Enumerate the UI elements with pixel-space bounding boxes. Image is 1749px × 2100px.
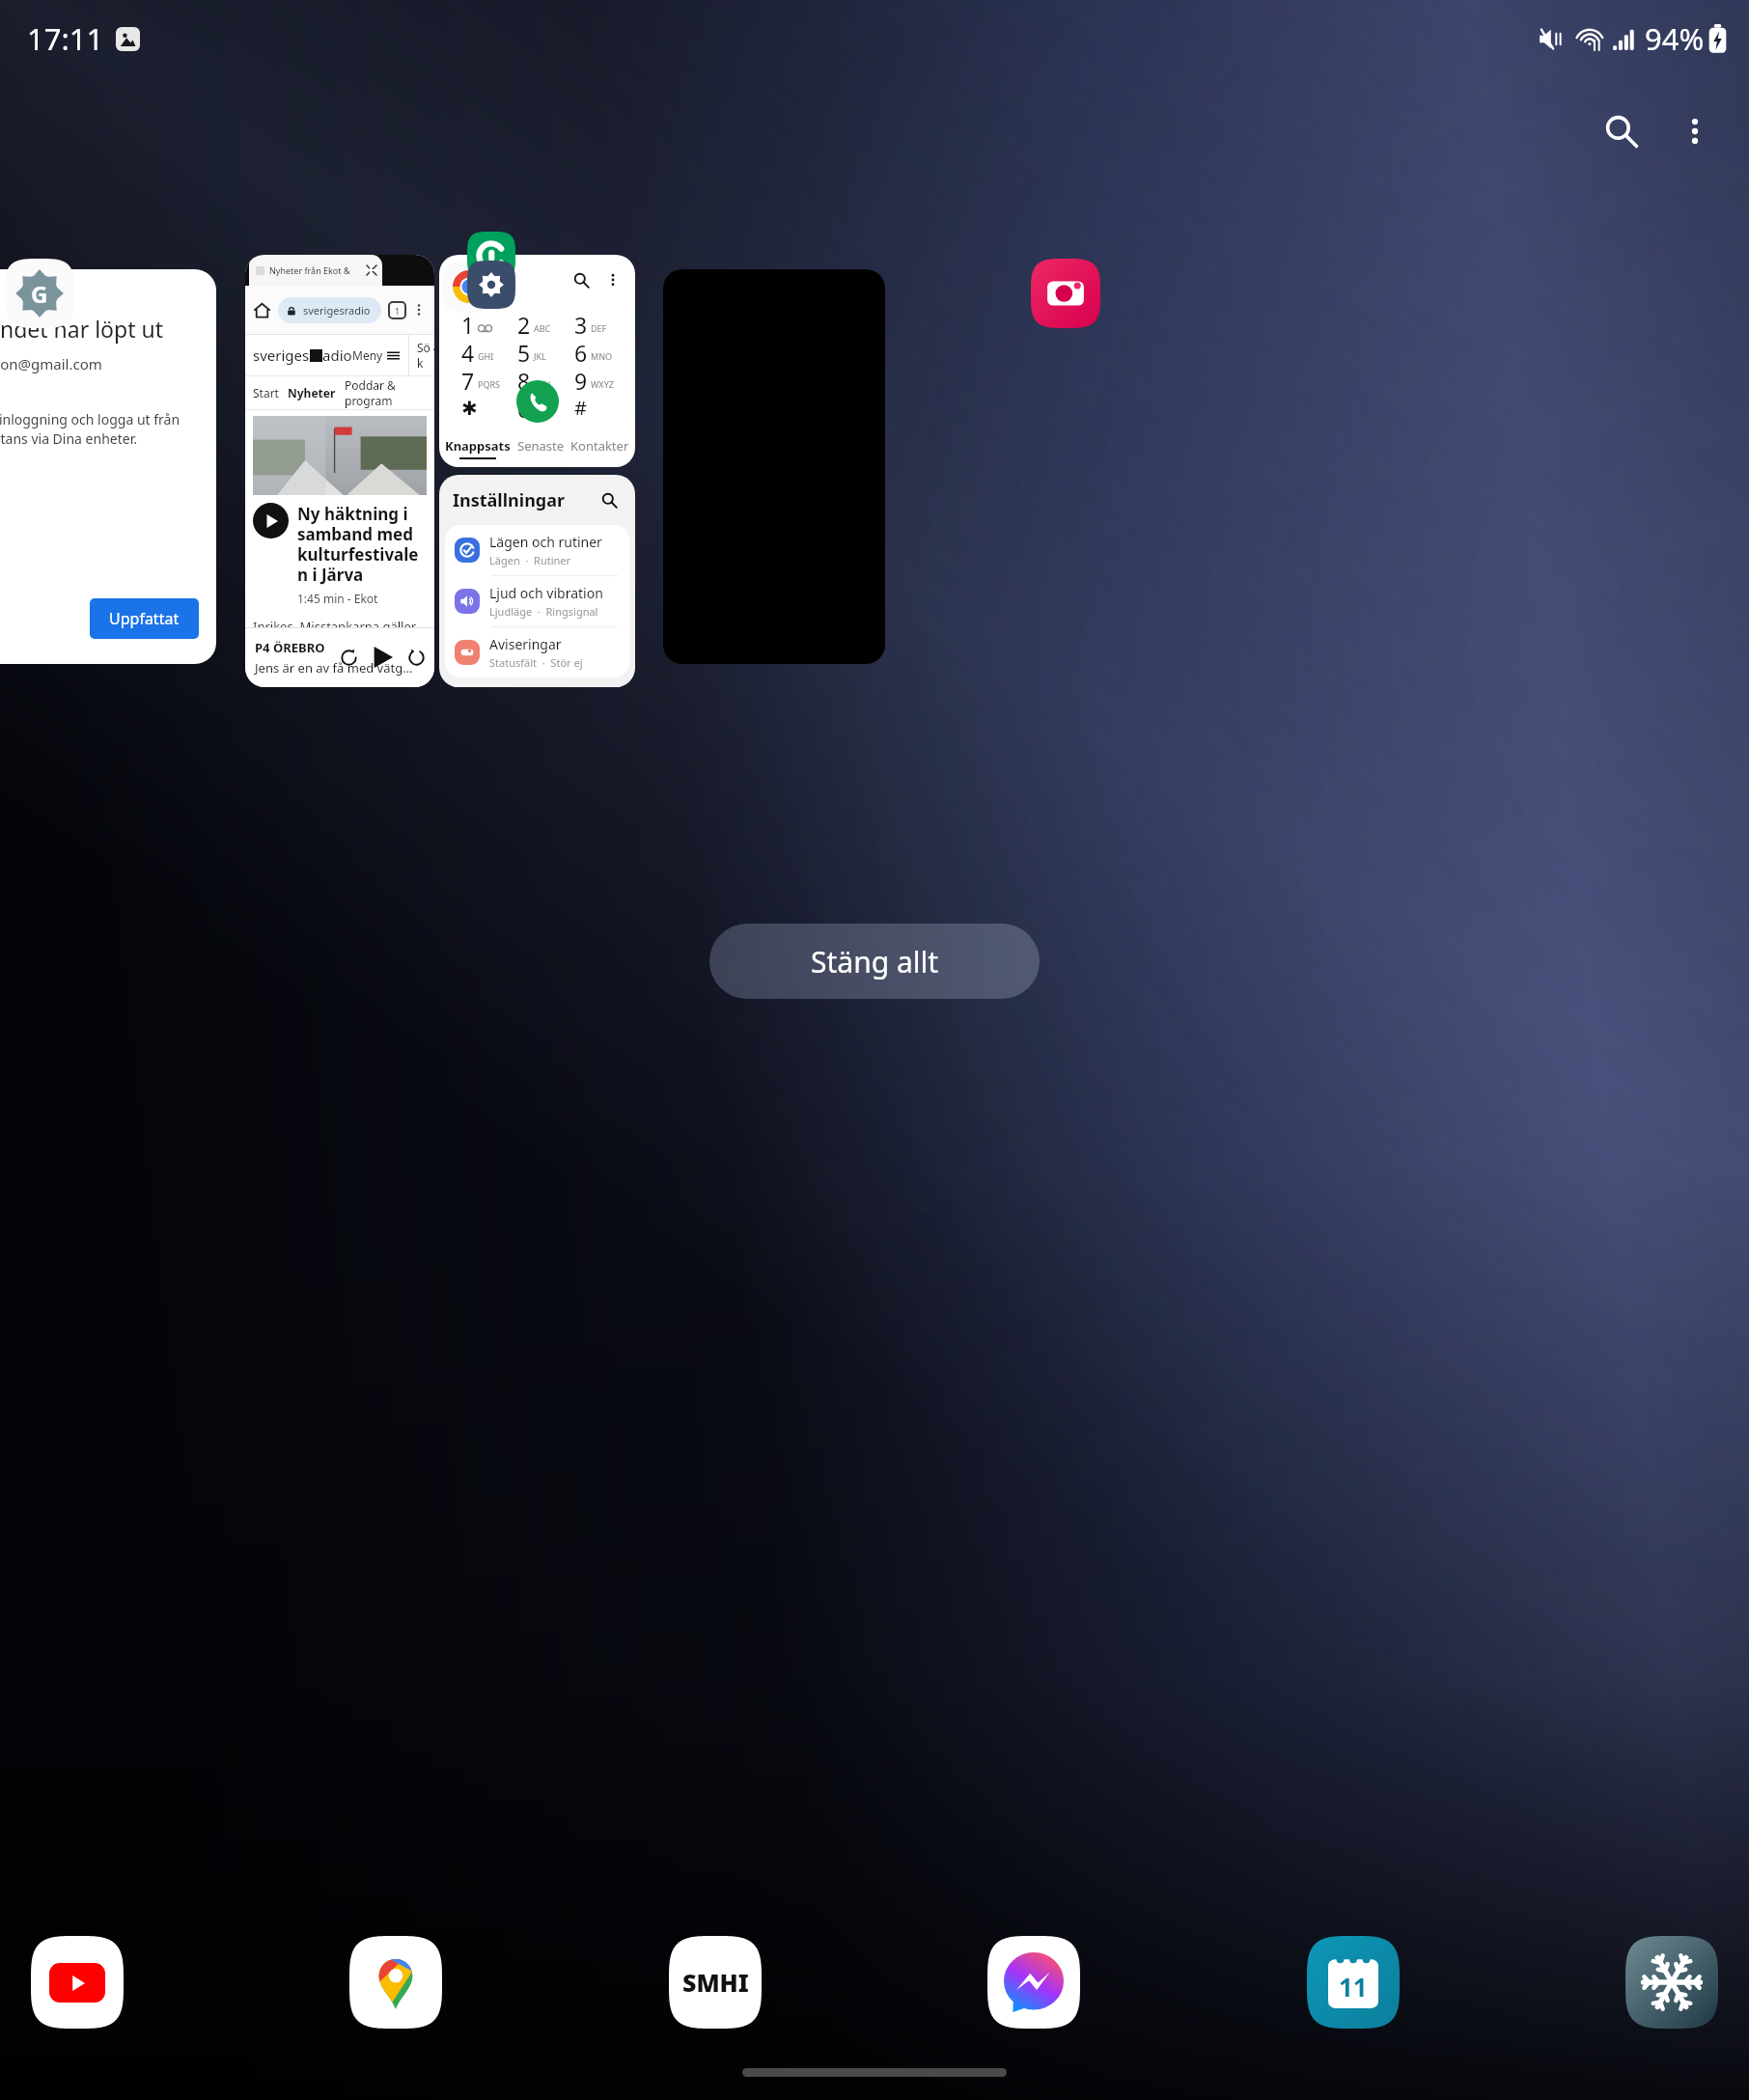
button[interactable]: 5 bbox=[509, 338, 566, 366]
button[interactable]: Kontakter bbox=[570, 437, 629, 455]
button[interactable]: 0 bbox=[509, 394, 566, 422]
button[interactable]: 4 bbox=[453, 338, 509, 366]
staticText: Senaste bbox=[517, 437, 565, 455]
button[interactable]: More options bbox=[601, 268, 625, 291]
button[interactable]: Maps bbox=[347, 1934, 444, 2031]
button[interactable]: 7 bbox=[453, 366, 509, 394]
button[interactable]: sverigesradio.se/nyh bbox=[278, 297, 381, 323]
staticText: Kontakter bbox=[570, 437, 629, 455]
staticText: Inrikes. Misstankarna gäller olaga frihe… bbox=[253, 618, 427, 687]
button[interactable]: Search settings bbox=[597, 487, 622, 512]
staticText: Meny bbox=[352, 347, 383, 363]
staticText: DEF bbox=[591, 322, 607, 334]
button[interactable]: YouTube bbox=[29, 1934, 125, 2031]
staticText: joel.a.oscarsson@gmail.com bbox=[0, 354, 102, 373]
button[interactable]: Search bbox=[1583, 93, 1660, 170]
staticText: TUV bbox=[534, 378, 550, 390]
staticText: 5 bbox=[517, 338, 531, 366]
button[interactable]: Meddelandet har löpt ut bbox=[0, 269, 216, 664]
staticText: 6 bbox=[574, 338, 588, 366]
button[interactable]: Aviseringar bbox=[445, 627, 629, 677]
staticText: # bbox=[574, 395, 587, 421]
staticText: PQRS bbox=[478, 378, 501, 390]
button[interactable]: Nyheter från Ekot & lokala nyhet bbox=[245, 255, 434, 687]
button[interactable]: Inställningar bbox=[439, 475, 635, 687]
staticText: Sök bbox=[417, 340, 434, 371]
staticText: Ljudläge · Ringsignal bbox=[489, 604, 598, 619]
button[interactable]: Calendar bbox=[1305, 1934, 1402, 2031]
button[interactable]: Google Settings bbox=[5, 259, 74, 328]
staticText: 4 bbox=[461, 338, 475, 366]
button[interactable]: 8 bbox=[509, 366, 566, 394]
staticText: Poddar & program bbox=[345, 377, 434, 408]
staticText: G bbox=[31, 278, 48, 310]
staticText: ✱ bbox=[461, 397, 478, 419]
button[interactable]: Play bbox=[368, 643, 397, 672]
button[interactable]: Lägen och rutiner bbox=[445, 525, 629, 575]
button[interactable] bbox=[253, 503, 289, 539]
button[interactable]: Phone bbox=[467, 232, 515, 280]
staticText: Nyheter från Ekot & lokala nyhet bbox=[269, 264, 352, 276]
staticText: 94% bbox=[1645, 18, 1705, 59]
button[interactable]: # bbox=[566, 394, 623, 422]
staticText: Du kan se din inloggning och logga ut fr… bbox=[0, 410, 199, 448]
staticText: Aviseringar bbox=[489, 635, 562, 653]
button[interactable]: Rewind 15 seconds bbox=[336, 645, 361, 670]
staticText: 7 bbox=[461, 366, 475, 394]
button[interactable]: 9 bbox=[566, 366, 623, 394]
staticText: 2 bbox=[517, 310, 531, 338]
staticText: WXYZ bbox=[591, 378, 614, 390]
staticText: Meddelandet har löpt ut bbox=[0, 314, 163, 344]
button[interactable] bbox=[663, 269, 885, 664]
button[interactable]: 3 bbox=[566, 310, 623, 338]
staticText: Stäng allt bbox=[811, 942, 939, 981]
button[interactable]: Nyheter från Ekot & lokala nyhet bbox=[249, 255, 382, 286]
staticText: SMHI bbox=[682, 1966, 749, 1999]
staticText: Start bbox=[253, 385, 279, 401]
button[interactable]: Search contacts bbox=[439, 255, 635, 467]
staticText: Statusfält · Stör ej bbox=[489, 655, 583, 670]
button[interactable]: Chrome bbox=[443, 261, 495, 313]
button[interactable]: ✱ bbox=[453, 394, 509, 422]
staticText: sverigesradio.se/nyh bbox=[303, 303, 373, 318]
staticText: Ljud och vibration bbox=[489, 584, 603, 602]
button[interactable]: Camera bbox=[1031, 259, 1100, 328]
staticText: sveriges bbox=[253, 345, 310, 365]
staticText: Uppfattat bbox=[109, 608, 180, 629]
staticText: + bbox=[534, 406, 540, 418]
staticText: Knappsats bbox=[445, 437, 511, 455]
staticText: 1:45 min - Ekot bbox=[297, 591, 378, 606]
button[interactable]: More options bbox=[1660, 97, 1730, 166]
button[interactable]: Skärm bbox=[445, 686, 629, 687]
staticText: ABC bbox=[534, 322, 551, 334]
staticText: 8 bbox=[517, 366, 531, 394]
button[interactable]: Ljud och vibration bbox=[445, 576, 629, 626]
staticText: 1 bbox=[461, 310, 475, 338]
staticText: Nyheter bbox=[288, 385, 336, 401]
button[interactable]: 6 bbox=[566, 338, 623, 366]
staticText: 11 bbox=[1339, 1970, 1368, 2003]
button[interactable]: Uppfattat bbox=[90, 598, 199, 639]
staticText: 3 bbox=[574, 310, 588, 338]
button[interactable]: Messenger bbox=[986, 1934, 1082, 2031]
button[interactable]: 1 bbox=[453, 310, 509, 338]
staticText: Lägen · Rutiner bbox=[489, 553, 571, 567]
staticText: 9 bbox=[574, 366, 588, 394]
staticText: Lägen och rutiner bbox=[489, 533, 602, 551]
button[interactable]: SMHI bbox=[667, 1934, 763, 2031]
button[interactable]: Weather bbox=[1624, 1934, 1720, 2031]
button[interactable]: Call bbox=[516, 380, 559, 423]
staticText: JKL bbox=[534, 350, 546, 362]
button[interactable]: 2 bbox=[509, 310, 566, 338]
button[interactable]: Settings bbox=[467, 261, 515, 309]
button[interactable]: Knappsats bbox=[445, 437, 511, 459]
button[interactable]: Stäng allt bbox=[709, 924, 1040, 999]
button[interactable]: Senaste bbox=[517, 437, 565, 455]
button[interactable]: Forward 15 seconds bbox=[403, 645, 429, 670]
staticText: MNO bbox=[591, 350, 613, 362]
button[interactable]: P4 ÖREBRO bbox=[245, 627, 434, 687]
staticText: Inställningar bbox=[453, 488, 566, 512]
staticText: Ny häktning i samband med kulturfestival… bbox=[297, 503, 427, 586]
button[interactable]: Search contacts bbox=[569, 267, 594, 292]
staticText: GHI bbox=[478, 350, 494, 362]
